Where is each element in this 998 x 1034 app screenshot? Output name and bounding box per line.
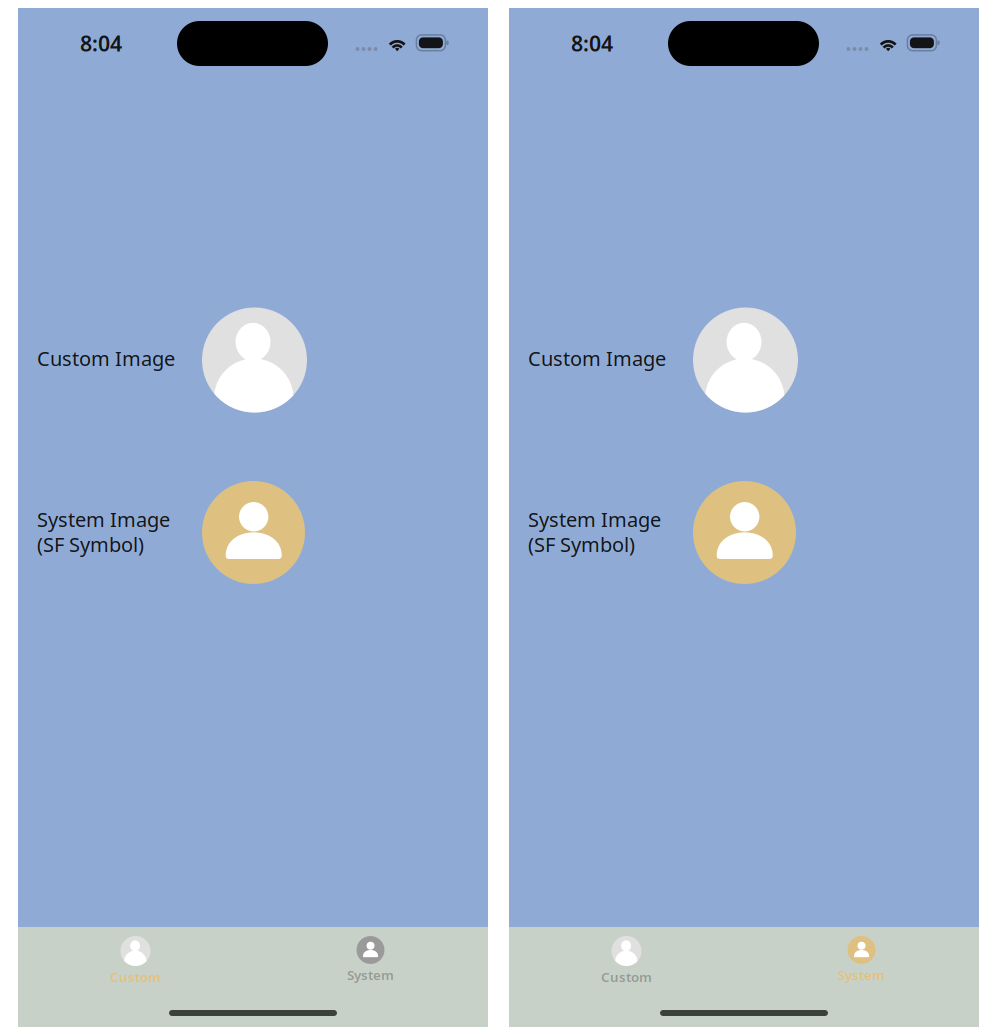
staticText: System [838,966,885,984]
staticText: System [347,966,394,984]
staticText: Custom Image [37,345,175,372]
staticText: Custom [110,968,161,986]
button[interactable]: Custom [509,927,744,1001]
staticText: System Image [528,506,661,533]
staticText: 8:04 [80,29,122,57]
staticText: Custom Image [528,345,666,372]
staticText: (SF Symbol) [528,531,635,558]
button[interactable]: System [253,927,488,1001]
staticText: (SF Symbol) [37,531,144,558]
staticText: 8:04 [571,29,613,57]
staticText: System Image [37,506,170,533]
button[interactable]: System [744,927,979,1001]
staticText: Custom [601,968,652,986]
button[interactable]: Custom [18,927,253,1001]
